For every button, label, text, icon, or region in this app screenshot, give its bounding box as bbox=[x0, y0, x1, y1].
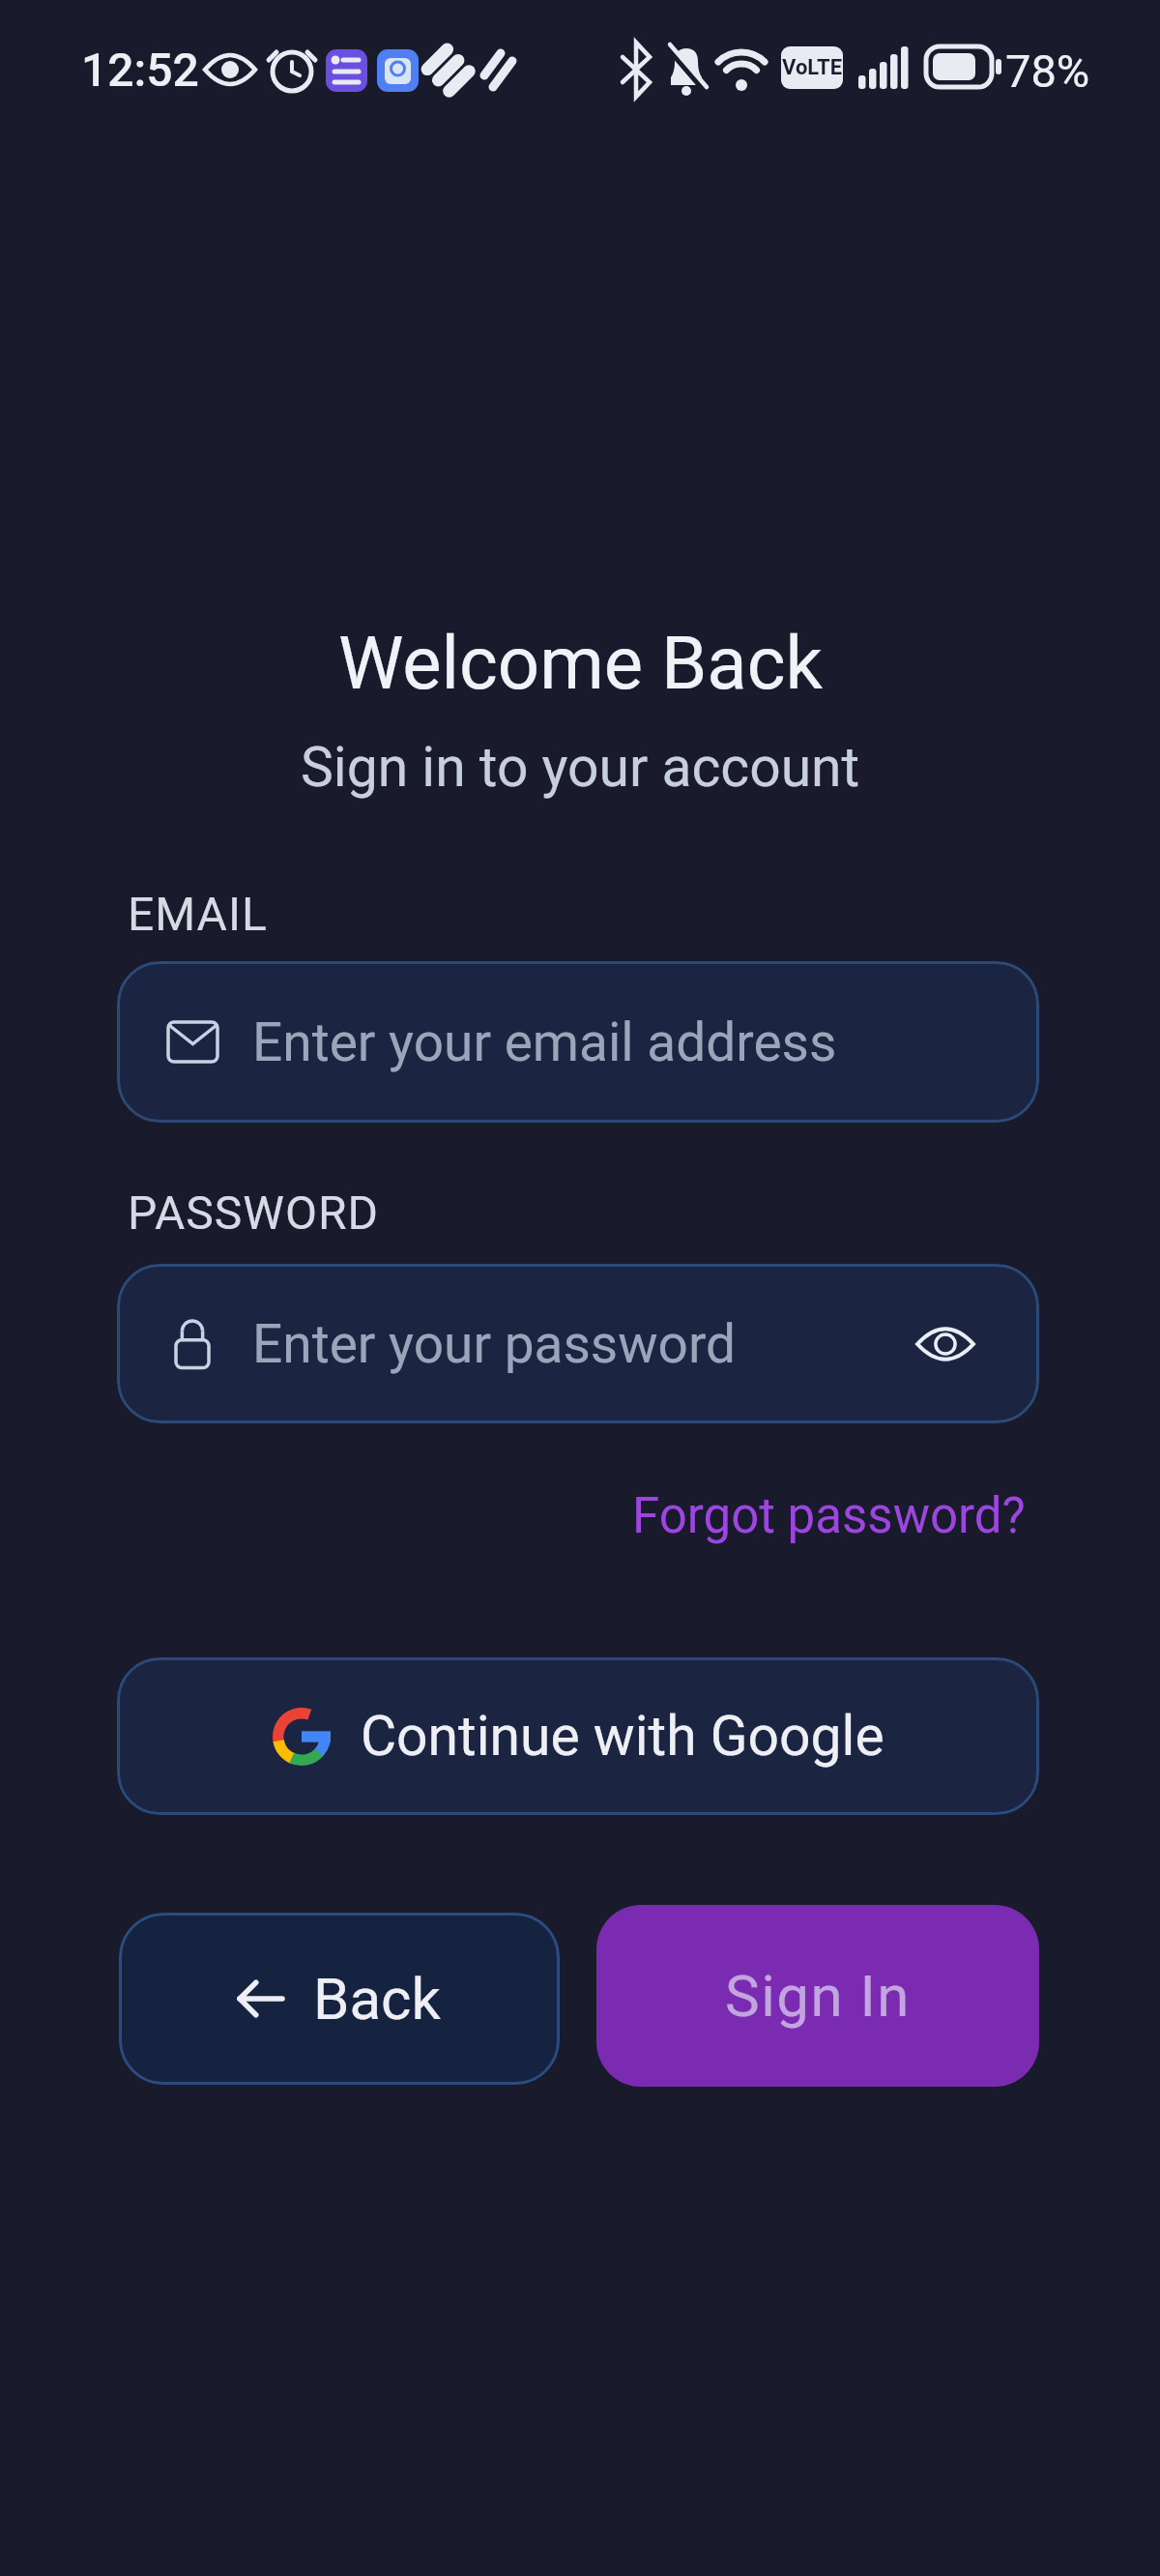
button[interactable] bbox=[915, 1324, 975, 1364]
staticText: Sign in to your account bbox=[301, 735, 860, 800]
button[interactable]: Back bbox=[119, 1913, 560, 2085]
button[interactable]: Sign In bbox=[596, 1905, 1039, 2087]
button[interactable]: Enter your email address bbox=[117, 961, 1039, 1123]
staticText: Forgot password? bbox=[632, 1487, 1026, 1545]
button[interactable]: Enter your password bbox=[117, 1264, 1039, 1423]
staticText: Continue with Google bbox=[361, 1704, 884, 1769]
staticText: Enter your email address bbox=[252, 1011, 837, 1073]
staticText: VoLTE bbox=[782, 55, 843, 80]
button[interactable]: Continue with Google bbox=[117, 1657, 1039, 1815]
staticText: 12:52 bbox=[81, 43, 199, 97]
staticText: Welcome Back bbox=[338, 620, 823, 706]
staticText: Sign In bbox=[725, 1962, 911, 2030]
staticText: PASSWORD bbox=[128, 1186, 380, 1240]
staticText: EMAIL bbox=[128, 887, 268, 941]
staticText: Enter your password bbox=[252, 1313, 737, 1375]
button[interactable]: Forgot password? bbox=[632, 1487, 1026, 1545]
staticText: Back bbox=[313, 1965, 441, 2033]
staticText: 78% bbox=[1005, 44, 1090, 98]
